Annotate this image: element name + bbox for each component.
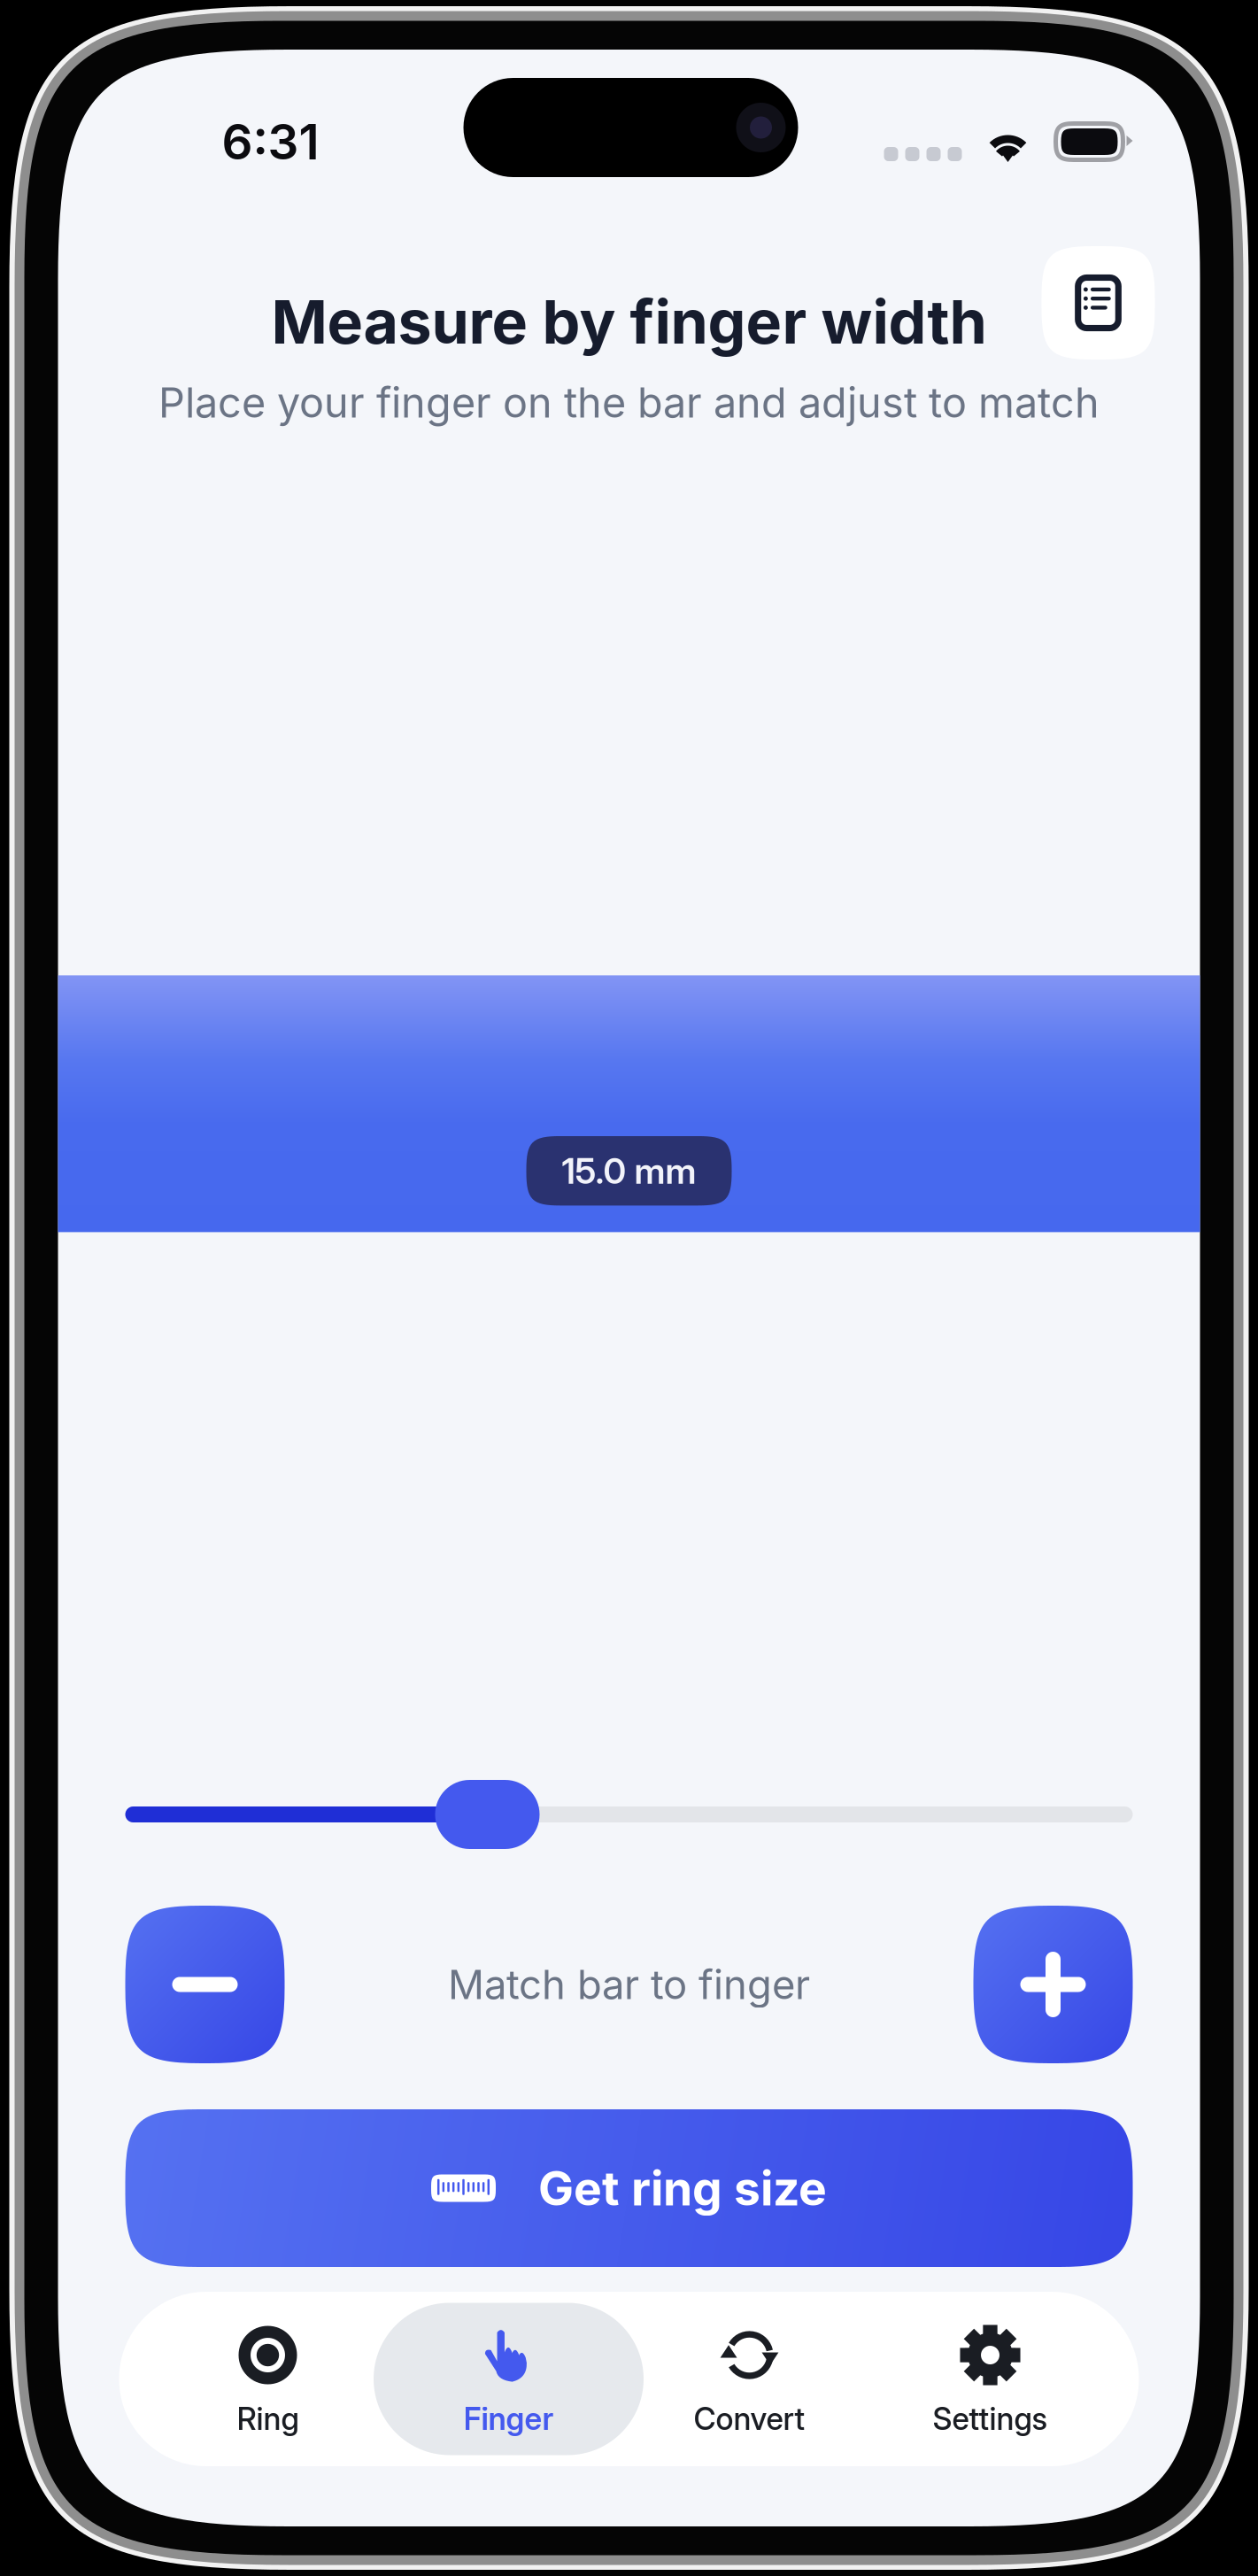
staticText: Ring [237, 2400, 299, 2437]
staticText: 6:31 [222, 112, 319, 171]
staticText: 15.0 mm [562, 1149, 696, 1192]
button[interactable]: Finger [388, 2303, 629, 2455]
staticText: Place your finger on the bar and adjust … [158, 378, 1100, 428]
button[interactable]: Settings [870, 2303, 1111, 2455]
button[interactable]: Increase width [973, 1906, 1133, 2063]
button[interactable]: Convert [629, 2303, 870, 2455]
staticText: Finger [463, 2400, 554, 2437]
staticText: Settings [933, 2400, 1048, 2437]
staticText: Convert [694, 2400, 805, 2437]
button[interactable]: Decrease width [125, 1906, 285, 2063]
staticText: Measure by finger width [271, 285, 987, 358]
button[interactable]: Get ring size [125, 2109, 1133, 2267]
staticText: Get ring size [538, 2160, 827, 2217]
button[interactable]: Ring size chart [1042, 246, 1155, 360]
button[interactable]: Ring [147, 2303, 388, 2455]
staticText: Match bar to finger [448, 1960, 810, 2009]
